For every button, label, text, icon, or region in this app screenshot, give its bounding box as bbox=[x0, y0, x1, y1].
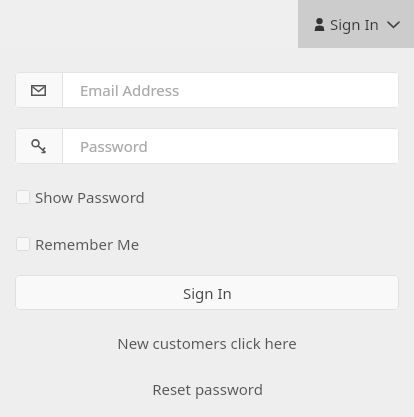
button[interactable]: Sign In bbox=[15, 275, 399, 310]
staticText: Password bbox=[80, 136, 148, 156]
button[interactable]: Sign In bbox=[298, 0, 414, 48]
button[interactable]: Remember Me bbox=[16, 234, 398, 254]
button[interactable]: New customers click here bbox=[0, 333, 414, 353]
button[interactable]: Reset password bbox=[0, 379, 414, 399]
staticText: Email Address bbox=[80, 80, 180, 100]
staticText: Sign In bbox=[330, 14, 379, 34]
staticText: Show Password bbox=[35, 187, 145, 207]
staticText: Reset password bbox=[152, 379, 263, 399]
other: Password bbox=[15, 128, 62, 164]
button[interactable]: Password bbox=[15, 128, 399, 164]
other: Email bbox=[15, 72, 62, 108]
button[interactable]: Show Password bbox=[16, 187, 398, 207]
staticText: Remember Me bbox=[35, 234, 140, 254]
staticText: Sign In bbox=[183, 283, 232, 303]
button[interactable]: Email bbox=[15, 72, 399, 108]
staticText: New customers click here bbox=[117, 333, 297, 353]
